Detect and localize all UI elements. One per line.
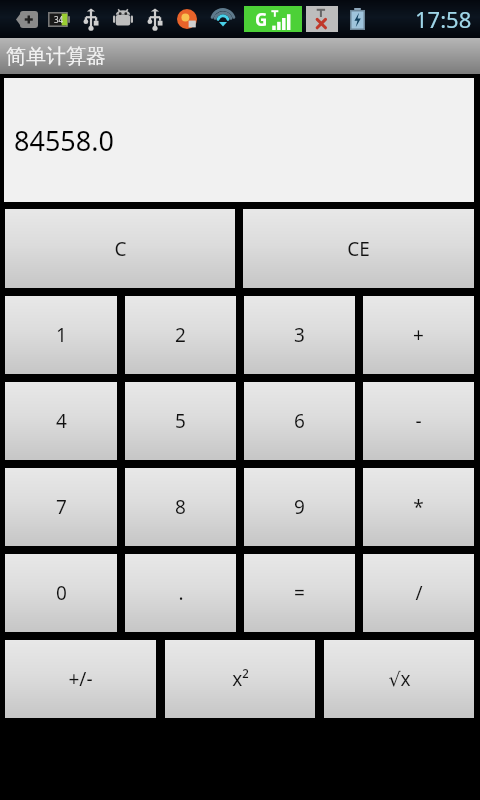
button[interactable]: x² xyxy=(165,640,315,718)
staticText: * xyxy=(413,494,424,520)
staticText: 34 xyxy=(54,14,64,25)
staticText: √x xyxy=(388,666,411,692)
staticText: 6 xyxy=(294,408,305,434)
button[interactable]: 2 xyxy=(125,296,236,374)
button[interactable]: 5 xyxy=(125,382,236,460)
staticText: 简单计算器 xyxy=(6,44,106,69)
button[interactable]: = xyxy=(244,554,355,632)
staticText: 9 xyxy=(294,494,305,520)
button[interactable]: - xyxy=(363,382,474,460)
button[interactable]: 9 xyxy=(244,468,355,546)
staticText: 0 xyxy=(56,580,67,606)
staticText: 17:58 xyxy=(415,4,472,34)
staticText: - xyxy=(415,408,422,434)
button[interactable]: C xyxy=(5,209,235,288)
staticText: . xyxy=(178,580,184,606)
staticText: + xyxy=(413,322,424,348)
staticText: CE xyxy=(347,236,370,262)
staticText: 7 xyxy=(56,494,67,520)
staticText: = xyxy=(294,580,305,606)
button[interactable]: CE xyxy=(243,209,474,288)
button[interactable]: 1 xyxy=(5,296,117,374)
staticText: / xyxy=(415,580,423,606)
staticText: 5 xyxy=(175,408,186,434)
staticText: x² xyxy=(232,666,249,692)
button[interactable]: +/- xyxy=(5,640,156,718)
button[interactable]: . xyxy=(125,554,236,632)
staticText: +/- xyxy=(68,666,93,692)
button[interactable]: / xyxy=(363,554,474,632)
staticText: 8 xyxy=(175,494,186,520)
staticText: 3 xyxy=(294,322,305,348)
button[interactable]: 6 xyxy=(244,382,355,460)
staticText: 84558.0 xyxy=(14,122,114,159)
staticText: 2 xyxy=(175,322,186,348)
staticText: 4 xyxy=(56,408,67,434)
button[interactable]: 0 xyxy=(5,554,117,632)
staticText: G xyxy=(255,8,268,31)
button[interactable]: 8 xyxy=(125,468,236,546)
button[interactable]: * xyxy=(363,468,474,546)
button[interactable]: √x xyxy=(324,640,474,718)
button[interactable]: + xyxy=(363,296,474,374)
staticText: C xyxy=(114,236,127,262)
button[interactable]: 3 xyxy=(244,296,355,374)
staticText: 1 xyxy=(56,322,67,348)
button[interactable]: 4 xyxy=(5,382,117,460)
button[interactable]: 7 xyxy=(5,468,117,546)
